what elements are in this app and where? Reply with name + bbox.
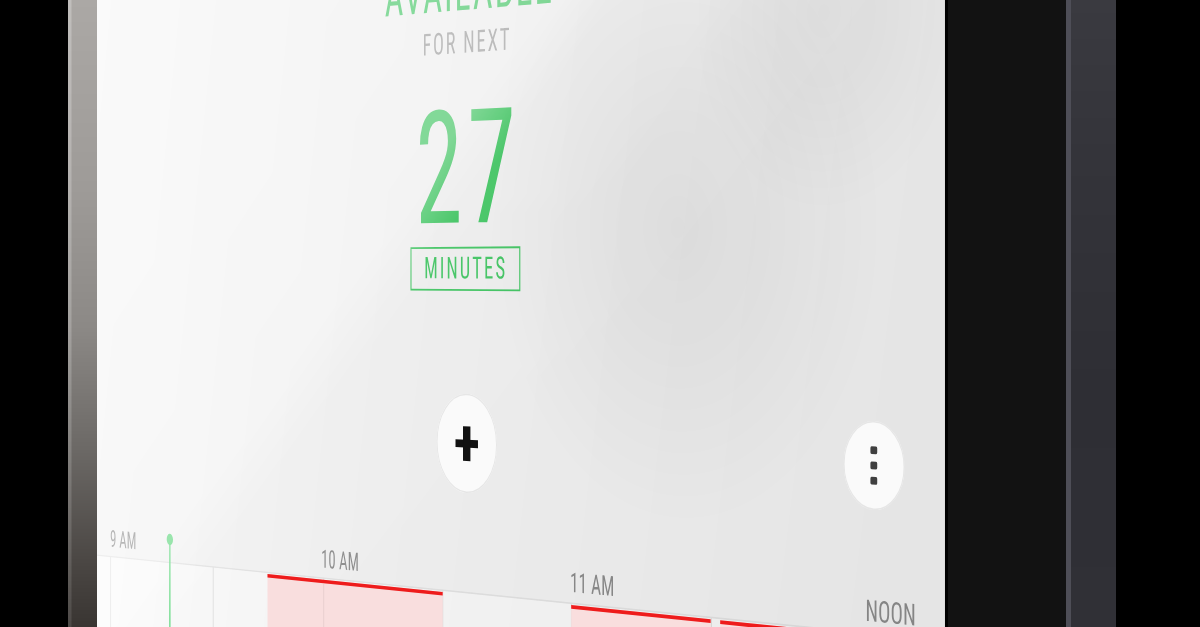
button[interactable]: Lunch with Sam, 11:30 AM to 12:15 PM bbox=[720, 620, 945, 627]
button[interactable]: More options bbox=[843, 420, 905, 512]
button[interactable]: Standup, 11:00 to 11:30 AM bbox=[571, 605, 711, 627]
button[interactable]: Design review, 9:45 to 10:30 AM bbox=[267, 574, 443, 627]
button[interactable]: Add event bbox=[437, 393, 497, 495]
